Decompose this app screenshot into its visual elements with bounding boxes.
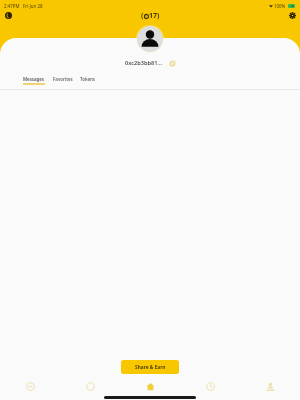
- button[interactable]: Share & Earn: [121, 360, 179, 374]
- staticText: Tokens: [80, 76, 96, 82]
- button[interactable]: Messages: [23, 76, 45, 89]
- button[interactable]: Copy address: [169, 60, 176, 67]
- button[interactable]: Menu: [2, 9, 15, 22]
- staticText: Favorites: [53, 76, 73, 82]
- staticText: Share & Earn: [135, 364, 166, 371]
- staticText: (: [141, 11, 144, 21]
- staticText: Fri Jun 28: [23, 3, 43, 9]
- button[interactable]: Activity: [180, 378, 240, 394]
- button[interactable]: Tokens: [80, 76, 96, 89]
- staticText: 100%: [274, 3, 286, 9]
- button[interactable]: Messages: [0, 378, 60, 394]
- button[interactable]: Profile: [240, 378, 300, 394]
- staticText: 17): [149, 11, 160, 21]
- button[interactable]: Profile picture: [137, 26, 163, 52]
- button[interactable]: Home: [120, 378, 180, 394]
- staticText: 0xc2b3bb81...: [125, 59, 162, 67]
- staticText: Messages: [23, 76, 45, 82]
- button[interactable]: Favorites: [53, 76, 73, 89]
- button[interactable]: Explore: [60, 378, 120, 394]
- staticText: 2:47PM: [4, 3, 20, 9]
- button[interactable]: (: [138, 9, 163, 23]
- button[interactable]: Settings: [286, 9, 298, 21]
